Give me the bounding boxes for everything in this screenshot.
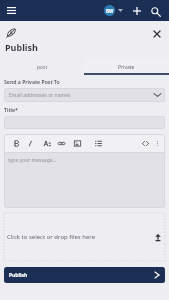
button[interactable]: Email addresses or names (4, 88, 165, 102)
button[interactable]: Account menu (104, 5, 123, 16)
button[interactable]: Private (84, 59, 169, 75)
button[interactable]: Close (149, 26, 165, 42)
staticText: type your message... (8, 157, 57, 164)
button[interactable] (4, 116, 165, 129)
button[interactable]: Search (147, 3, 163, 19)
button[interactable]: Menu (3, 2, 20, 19)
button[interactable]: More options (150, 134, 164, 152)
staticText: Send a Private Post To (4, 78, 60, 85)
button[interactable]: Source code (138, 134, 152, 152)
staticText: BW (106, 8, 114, 14)
staticText: Click to select or drop files here (7, 233, 96, 241)
button[interactable]: Insert link (54, 134, 68, 152)
staticText: Email addresses or names (9, 92, 71, 99)
button[interactable]: Bulleted list (91, 134, 105, 152)
staticText: Publish (5, 41, 38, 53)
button[interactable]: Publish (4, 267, 165, 283)
staticText: Private (118, 64, 135, 71)
button[interactable]: Insert image (70, 134, 84, 152)
staticText: post (37, 64, 48, 71)
button[interactable]: Click to select or drop files here (4, 213, 165, 261)
button[interactable]: Upload file (152, 231, 164, 243)
button[interactable]: Italic (23, 134, 37, 152)
button[interactable]: type your message... (4, 153, 165, 208)
button[interactable]: Bold (9, 134, 23, 152)
button[interactable]: Font size (40, 134, 54, 152)
staticText: Publish (9, 272, 28, 279)
staticText: Title* (4, 106, 18, 113)
button[interactable]: post (0, 59, 84, 75)
button[interactable]: Add (129, 3, 145, 19)
